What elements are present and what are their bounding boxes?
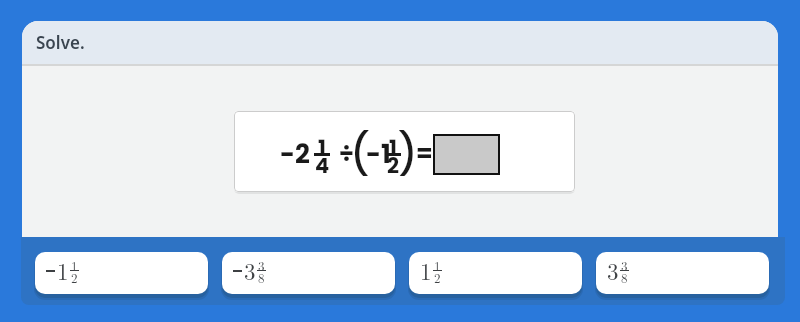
staticText: 1 [318,133,326,150]
staticText: 3 [244,254,256,287]
staticText: 1 [420,254,432,287]
staticText: 8 [621,268,628,279]
staticText: ( [350,126,370,182]
staticText: 1 [434,256,441,267]
staticText: ÷ [339,137,354,171]
button[interactable]: 3 [596,252,769,294]
button[interactable]: 1 [409,252,582,294]
staticText: 8 [258,268,265,279]
staticText: Solve. [36,31,85,54]
button[interactable]: 3 [222,252,395,294]
staticText: -2 [280,136,310,172]
staticText: 2 [387,151,399,168]
staticText: = [416,137,433,171]
staticText: ) [398,126,418,182]
staticText: 2 [434,268,441,279]
staticText: 3 [621,256,628,267]
button[interactable]: 1 [35,252,208,294]
staticText: 1 [389,133,397,150]
staticText: 4 [315,151,330,168]
staticText: 2 [71,268,78,279]
staticText: 3 [607,254,619,287]
staticText: -1 [366,136,391,172]
staticText: 3 [258,256,265,267]
staticText: 1 [71,256,78,267]
staticText: 1 [57,254,69,287]
button[interactable] [433,134,500,175]
